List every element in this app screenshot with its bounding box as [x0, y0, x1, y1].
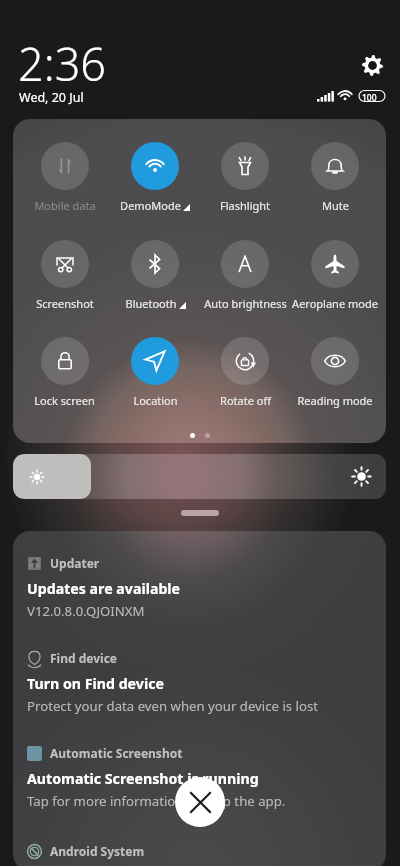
staticText: Protect your data even when your device … [27, 697, 319, 715]
button[interactable]: Location [110, 337, 200, 408]
staticText: Rotate off [220, 393, 271, 408]
button[interactable]: Android System [27, 843, 386, 859]
button[interactable]: Settings [358, 51, 386, 79]
staticText: Tap for more information or stop the app… [27, 792, 286, 810]
button[interactable]: Screenshot [19, 240, 110, 311]
staticText: Auto brightness [204, 296, 287, 311]
staticText: Mobile data [34, 198, 96, 213]
staticText: Reading mode [297, 393, 373, 408]
button[interactable]: Flashlight [200, 142, 290, 213]
button[interactable]: Auto brightness [200, 240, 290, 311]
staticText: Mute [322, 198, 349, 213]
staticText: 2:36 [18, 33, 107, 94]
staticText: Location [133, 393, 178, 408]
button[interactable]: Bluetooth [110, 240, 200, 311]
staticText: Wed, 20 Jul [19, 89, 84, 106]
staticText: Aeroplane mode [292, 296, 378, 311]
button[interactable]: Find device [27, 650, 386, 715]
button[interactable]: Brightness [13, 454, 386, 499]
staticText: Automatic Screenshot is running [27, 769, 259, 788]
button[interactable]: Aeroplane mode [290, 240, 380, 311]
button[interactable]: Reading mode [290, 337, 380, 408]
staticText: Flashlight [220, 198, 270, 213]
staticText: Screenshot [36, 296, 94, 311]
button[interactable]: Close notifications [175, 777, 225, 827]
staticText: Find device [50, 650, 117, 666]
button[interactable]: Mute [290, 142, 380, 213]
staticText: Lock screen [34, 393, 95, 408]
staticText: Automatic Screenshot [50, 745, 183, 761]
staticText: Bluetooth [125, 296, 177, 311]
button[interactable]: Updater [27, 555, 386, 620]
staticText: 100 [362, 92, 377, 104]
staticText: Updates are available [27, 579, 181, 598]
button[interactable]: Rotate off [200, 337, 290, 408]
button[interactable]: Mobile data [19, 142, 110, 213]
staticText: Android System [50, 843, 145, 859]
staticText: DemoMode [120, 198, 181, 213]
staticText: Updater [50, 555, 100, 571]
staticText: V12.0.8.0.QJOINXM [27, 602, 145, 620]
button[interactable]: Lock screen [19, 337, 110, 408]
staticText: Turn on Find device [27, 674, 164, 693]
button[interactable]: DemoMode [110, 142, 200, 213]
button[interactable]: Automatic Screenshot [27, 745, 386, 810]
